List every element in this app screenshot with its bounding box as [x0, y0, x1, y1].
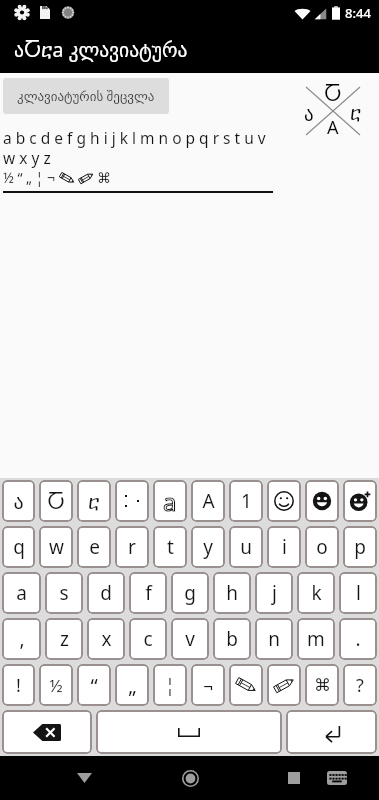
button[interactable]: ?	[343, 664, 377, 706]
staticText: ?	[356, 673, 364, 698]
staticText: a b c d e f g h i j k l m n o p q r s t …	[3, 127, 266, 168]
button[interactable]: Home	[168, 756, 212, 800]
button[interactable]: u	[229, 526, 263, 568]
button[interactable]: .	[339, 618, 377, 660]
button[interactable]: Switch keyboard	[315, 756, 359, 800]
staticText: l	[356, 580, 361, 606]
button[interactable]: j	[255, 572, 293, 614]
staticText: ⌘	[97, 170, 111, 186]
button[interactable]: smile_p	[343, 480, 377, 522]
button[interactable]: z	[45, 618, 83, 660]
button[interactable]: ,	[2, 618, 41, 660]
button[interactable]: outa	[153, 480, 187, 522]
button[interactable]: f	[129, 572, 167, 614]
button[interactable]: enter	[286, 710, 377, 754]
staticText: e	[89, 534, 100, 560]
staticText: 1	[241, 488, 252, 514]
staticText: ½ “ „ ¦ ¬	[3, 168, 59, 187]
staticText: Ⴀ	[324, 82, 342, 105]
staticText: n	[268, 626, 280, 652]
button[interactable]: g	[171, 572, 209, 614]
button[interactable]: y	[191, 526, 225, 568]
staticText: აႠⴀa კლავიატურა	[14, 36, 188, 63]
button[interactable]: v	[171, 618, 209, 660]
button[interactable]: Ⴀ	[39, 480, 73, 522]
staticText: q	[13, 534, 25, 560]
button[interactable]: b	[213, 618, 251, 660]
button[interactable]: pencil1	[229, 664, 263, 706]
staticText: k	[311, 580, 322, 606]
button[interactable]: ა	[2, 480, 35, 522]
button[interactable]: c	[129, 618, 167, 660]
staticText: Ⴀ	[47, 490, 65, 513]
staticText: 8:44	[345, 4, 371, 22]
button[interactable]: o	[305, 526, 339, 568]
staticText: r	[128, 534, 136, 560]
button[interactable]: e	[77, 526, 111, 568]
staticText: ½	[49, 674, 63, 697]
staticText: y	[203, 534, 213, 560]
button[interactable]: i	[267, 526, 301, 568]
staticText: “	[90, 672, 98, 699]
button[interactable]: space	[96, 710, 282, 754]
button[interactable]: a	[2, 572, 41, 614]
button[interactable]: “	[77, 664, 111, 706]
staticText: f	[145, 580, 152, 606]
button[interactable]: backspace	[2, 710, 92, 754]
staticText: g	[184, 580, 196, 606]
button[interactable]: x	[87, 618, 125, 660]
button[interactable]: d	[87, 572, 125, 614]
staticText: a	[16, 580, 27, 606]
button[interactable]: h	[213, 572, 251, 614]
button[interactable]: ¦	[153, 664, 187, 706]
button[interactable]: dots	[115, 480, 149, 522]
staticText: .	[355, 626, 361, 652]
staticText: v	[185, 626, 195, 652]
staticText: x	[101, 626, 112, 652]
staticText: ⴀ	[350, 102, 362, 124]
staticText: ¦	[165, 673, 175, 698]
staticText: ⌘	[314, 675, 331, 695]
staticText: h	[226, 580, 238, 606]
button[interactable]: ½	[39, 664, 73, 706]
staticText: b	[226, 626, 238, 652]
staticText: i	[282, 534, 287, 560]
staticText: !	[16, 673, 21, 698]
button[interactable]: „	[115, 664, 149, 706]
button[interactable]: !	[2, 664, 35, 706]
button[interactable]: ⴀ	[77, 480, 111, 522]
staticText: A	[202, 488, 215, 514]
button[interactable]: smile_f	[305, 480, 339, 522]
staticText: s	[59, 580, 69, 606]
staticText: a	[163, 485, 177, 518]
staticText: w	[49, 534, 64, 560]
button[interactable]: q	[2, 526, 35, 568]
button[interactable]: ¬	[191, 664, 225, 706]
staticText: u	[240, 534, 252, 560]
button[interactable]: n	[255, 618, 293, 660]
staticText: c	[143, 626, 153, 652]
button[interactable]: pencil2	[267, 664, 301, 706]
button[interactable]: r	[115, 526, 149, 568]
button[interactable]: 1	[229, 480, 263, 522]
staticText: ა	[13, 490, 24, 513]
staticText: კლავიატურის შეცვლა	[17, 87, 155, 105]
staticText: ¬	[203, 674, 213, 697]
button[interactable]: w	[39, 526, 73, 568]
button[interactable]: s	[45, 572, 83, 614]
button[interactable]: A	[191, 480, 225, 522]
button[interactable]: l	[339, 572, 377, 614]
staticText: ა	[304, 103, 314, 125]
staticText: „	[128, 672, 137, 699]
staticText: t	[167, 534, 174, 560]
button[interactable]: k	[297, 572, 335, 614]
button[interactable]: კლავიატურის შეცვლა	[3, 78, 169, 114]
staticText: ⴀ	[88, 490, 100, 513]
button[interactable]: ⌘	[305, 664, 339, 706]
button[interactable]: Hide keyboard	[62, 756, 106, 800]
button[interactable]: Recent apps	[272, 756, 316, 800]
button[interactable]: p	[343, 526, 377, 568]
button[interactable]: t	[153, 526, 187, 568]
button[interactable]: m	[297, 618, 335, 660]
button[interactable]: smile_o	[267, 480, 301, 522]
